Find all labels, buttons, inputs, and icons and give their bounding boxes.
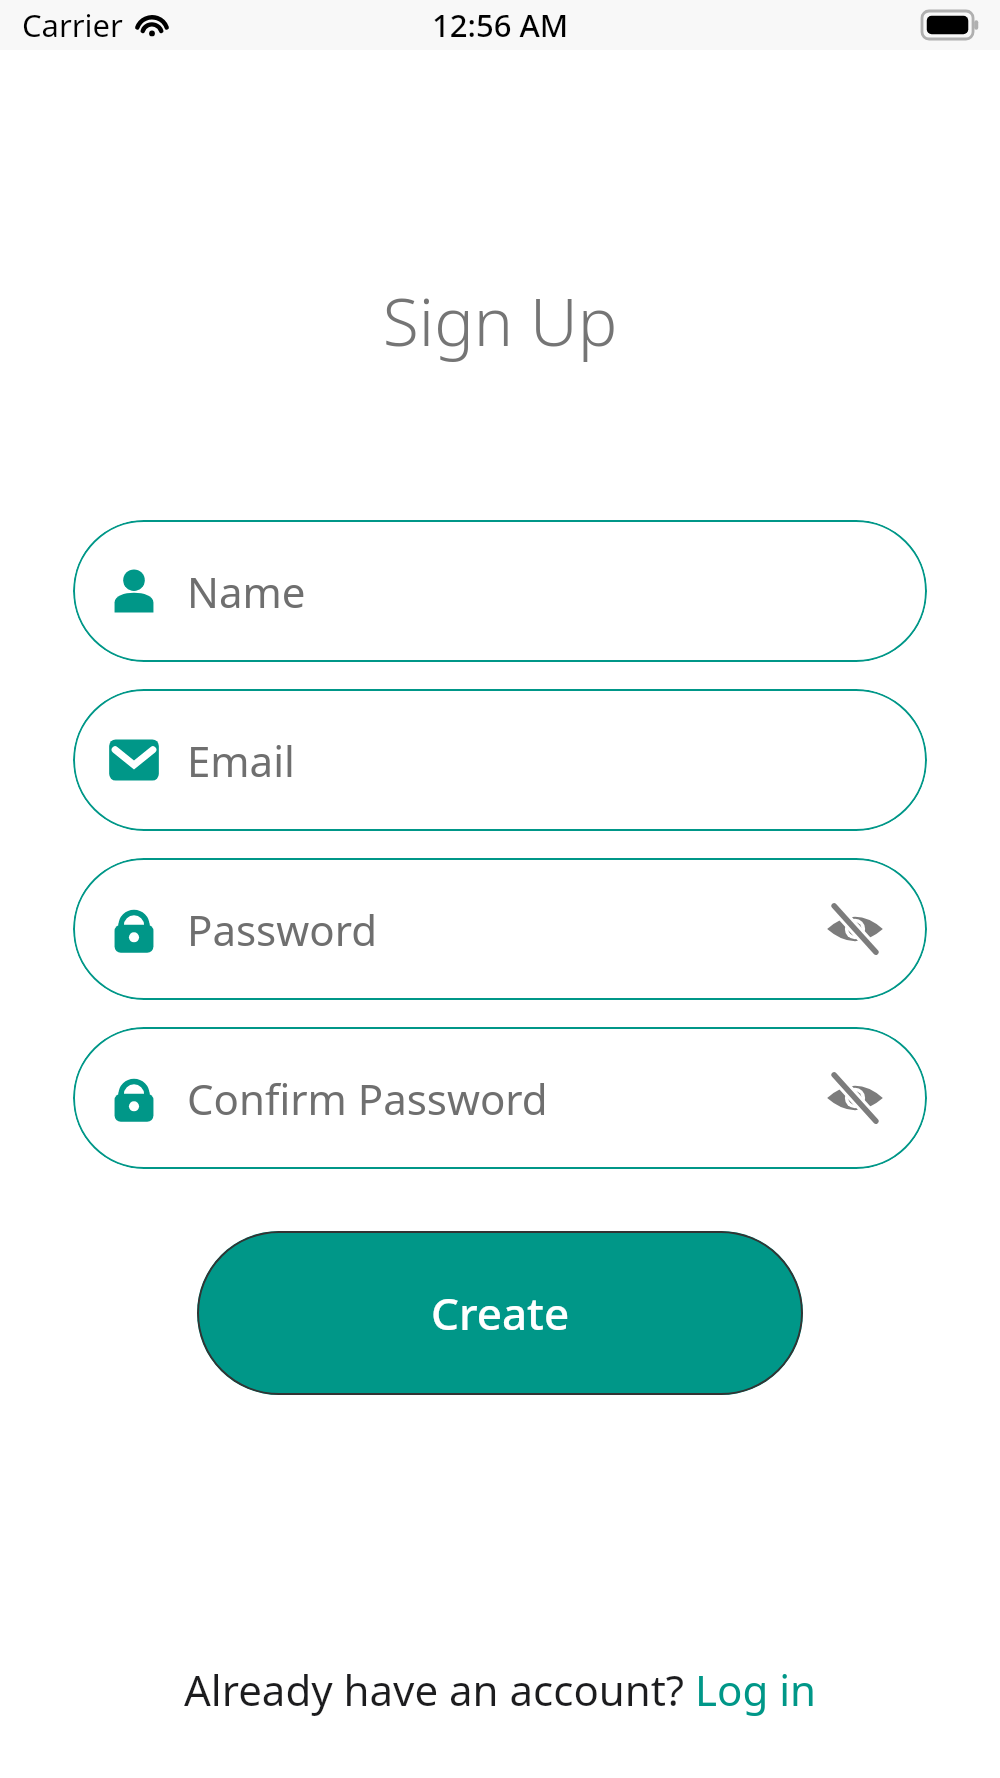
button[interactable]: Password	[73, 858, 927, 1000]
button[interactable]: Name	[73, 520, 927, 662]
staticText: Confirm Password	[187, 1070, 817, 1127]
staticText: 12:56 AM	[432, 4, 569, 46]
button[interactable]: Confirm Password	[73, 1027, 927, 1169]
staticText: Password	[187, 901, 817, 958]
button[interactable]: Email	[73, 689, 927, 831]
staticText: Name	[187, 563, 893, 620]
staticText: Email	[187, 732, 893, 789]
staticText: Sign Up	[0, 275, 1000, 365]
button[interactable]: Already have an account? Log in	[176, 1653, 824, 1726]
button[interactable]: Show password	[817, 891, 893, 967]
staticText: Carrier	[22, 4, 123, 46]
staticText: Already have an account? Log in	[184, 1661, 816, 1718]
button[interactable]: Show password	[817, 1060, 893, 1136]
button[interactable]: Create	[197, 1231, 803, 1395]
staticText: Create	[431, 1283, 570, 1343]
